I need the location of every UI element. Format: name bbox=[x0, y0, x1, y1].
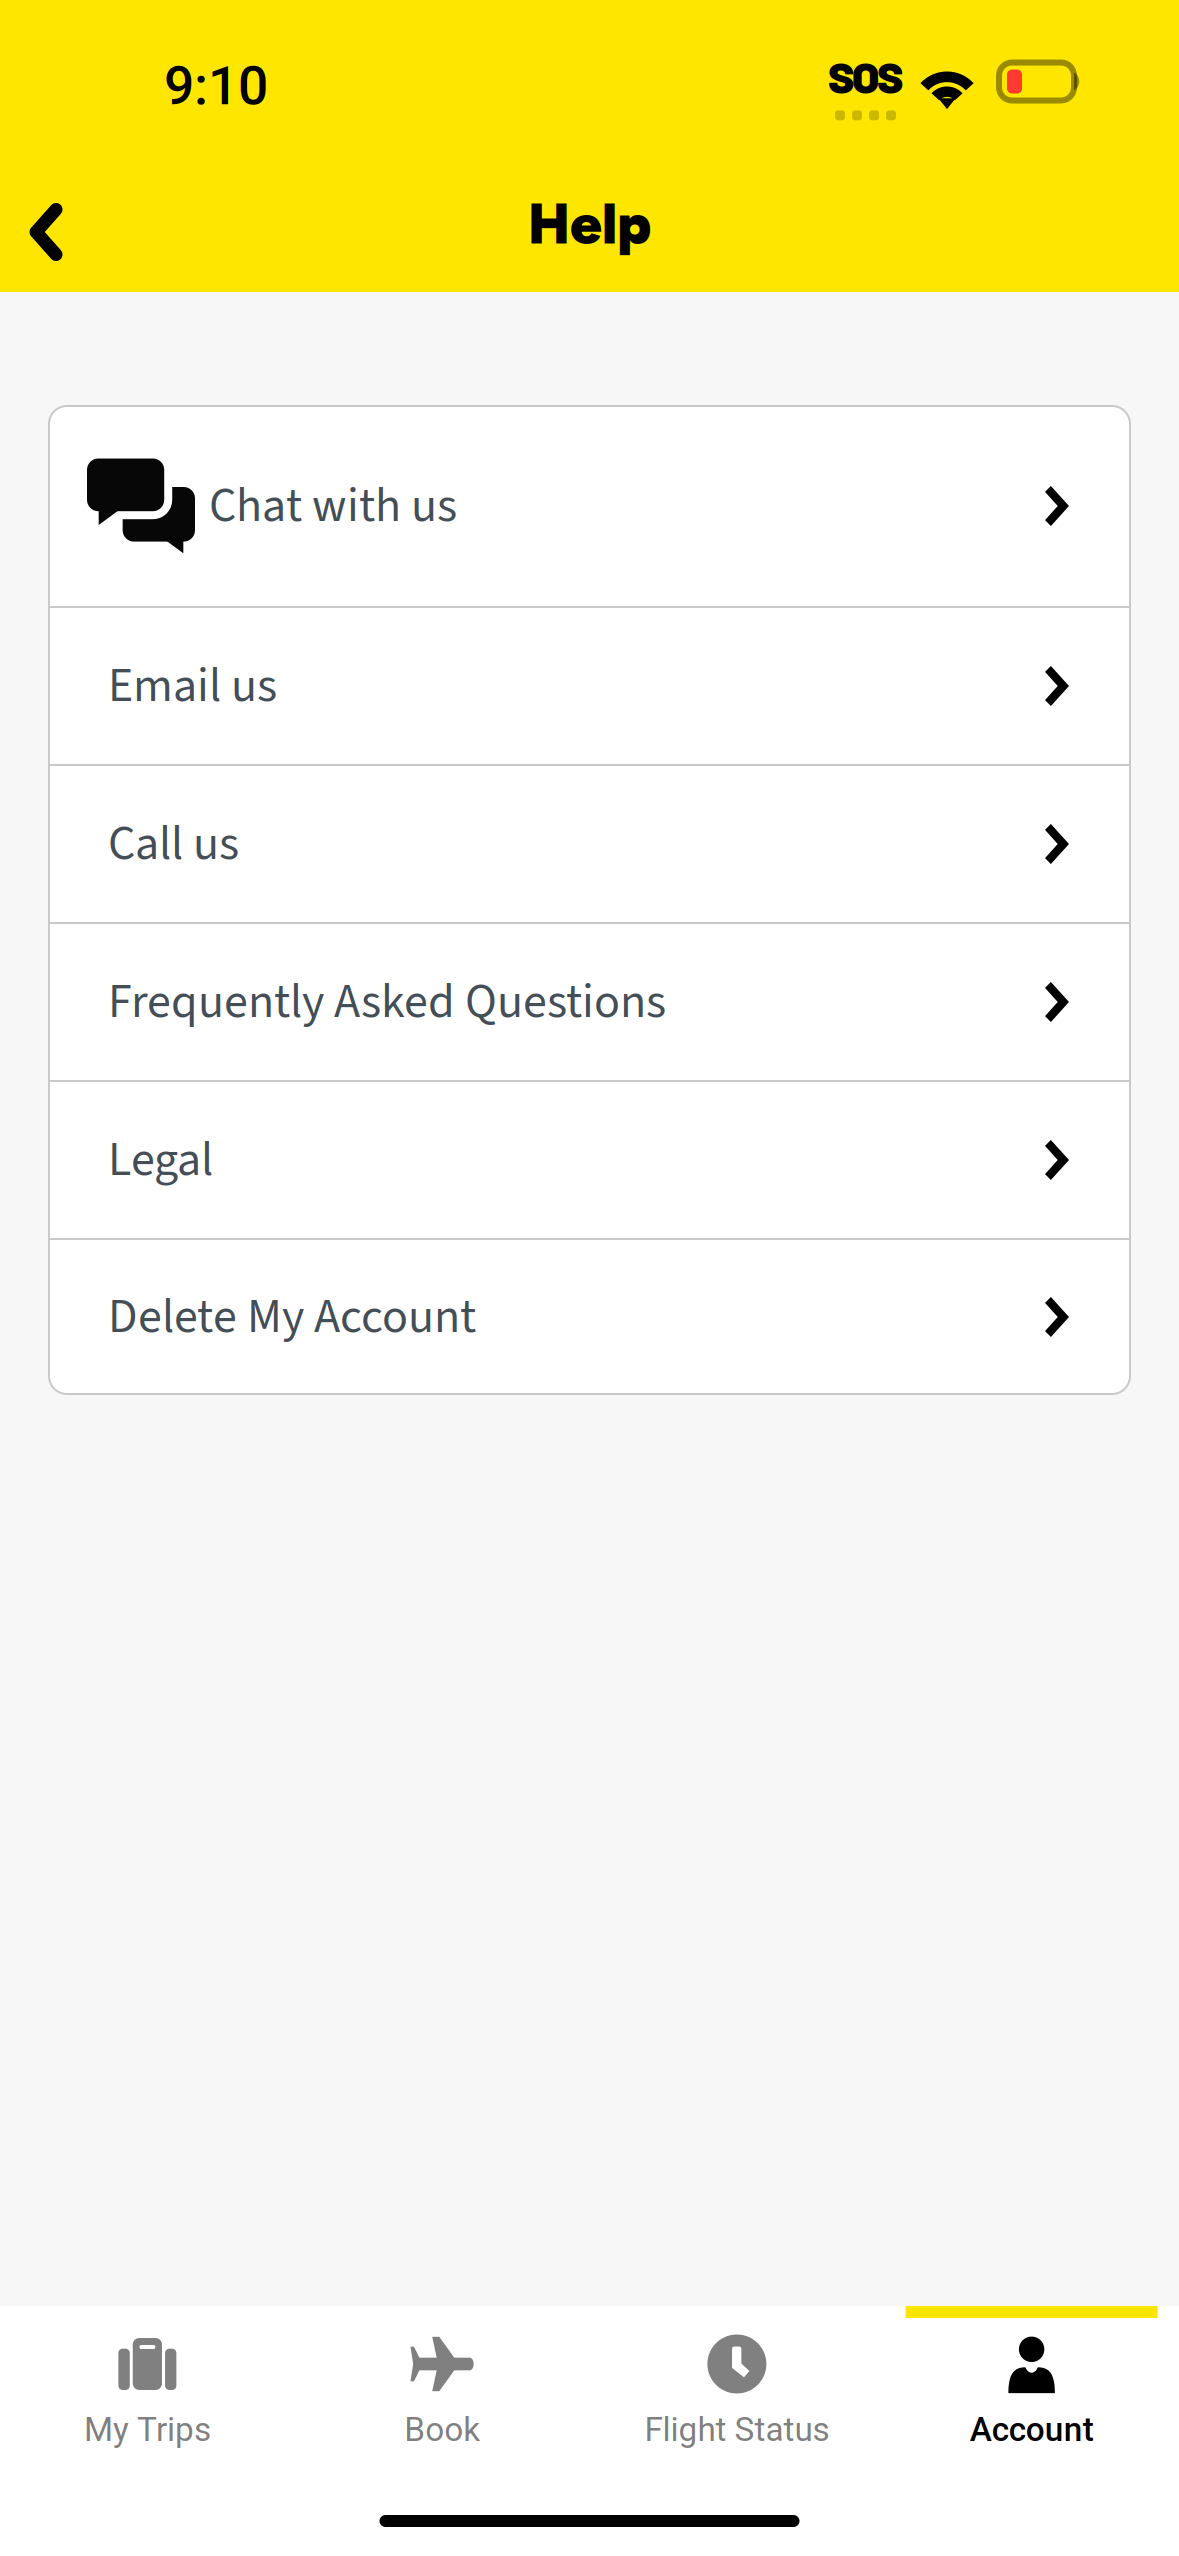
staticText: My Trips bbox=[84, 2410, 211, 2449]
staticText: Help bbox=[528, 190, 651, 258]
button[interactable]: Back bbox=[0, 181, 108, 282]
staticText: Chat with us bbox=[209, 472, 457, 540]
staticText: Account bbox=[970, 2410, 1094, 2449]
button[interactable]: My Trips bbox=[0, 2306, 295, 2492]
button[interactable]: Legal bbox=[49, 1082, 1130, 1238]
button[interactable]: Flight Status bbox=[589, 2306, 884, 2492]
staticText: Call us bbox=[108, 810, 239, 878]
staticText: Book bbox=[404, 2410, 480, 2449]
staticText: Legal bbox=[108, 1126, 213, 1194]
button[interactable]: Book bbox=[295, 2306, 590, 2492]
button[interactable]: Delete My Account bbox=[49, 1240, 1130, 1394]
staticText: Email us bbox=[108, 652, 277, 720]
staticText: Delete My Account bbox=[108, 1283, 476, 1351]
staticText: 9:10 bbox=[164, 55, 268, 117]
button[interactable]: Email us bbox=[49, 608, 1130, 764]
staticText: Frequently Asked Questions bbox=[108, 968, 666, 1036]
button[interactable]: Call us bbox=[49, 766, 1130, 922]
button[interactable]: Chat with us bbox=[49, 406, 1130, 606]
staticText: Flight Status bbox=[644, 2410, 829, 2449]
button[interactable]: Account bbox=[884, 2306, 1179, 2492]
staticText: SOS bbox=[828, 50, 903, 102]
button[interactable]: Frequently Asked Questions bbox=[49, 924, 1130, 1080]
